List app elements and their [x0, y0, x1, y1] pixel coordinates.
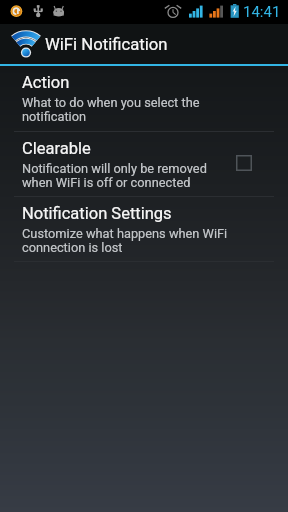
button[interactable]: Clearable checkbox [236, 155, 252, 171]
staticText: Action [22, 73, 70, 92]
staticText: Clearable [22, 139, 91, 158]
staticText: Notification will only be removed when W… [22, 161, 232, 190]
button[interactable]: Action [0, 66, 288, 131]
staticText: WiFi Notification [45, 35, 168, 55]
staticText: What to do when you select the notificat… [22, 95, 232, 124]
staticText: Customize what happens when WiFi connect… [22, 226, 232, 255]
button[interactable]: Clearable [0, 132, 288, 196]
staticText: Notification Settings [22, 204, 172, 223]
button[interactable]: Notification Settings [0, 197, 288, 261]
button[interactable]: WiFi Notification [0, 24, 288, 64]
staticText: 14:41 [243, 3, 281, 21]
